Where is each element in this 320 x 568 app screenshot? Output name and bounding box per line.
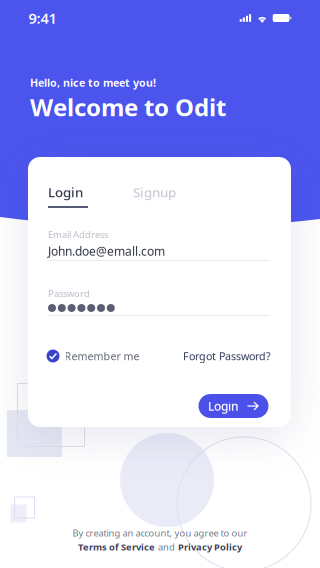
button[interactable]: Login [48,185,90,208]
staticText: Remember me [64,349,139,363]
staticText: Login [48,183,83,201]
button[interactable]: Terms of Service [78,541,155,553]
staticText: Hello, nice to meet you! [30,75,156,90]
button[interactable]: Forgot Password? [183,349,271,363]
staticText: 9:41 [28,8,56,28]
staticText: and [158,541,175,553]
staticText: By creating an account, you agree to our [72,527,247,539]
staticText: Email Address [48,228,108,241]
staticText: Signup [133,183,176,201]
staticText: Password [48,287,90,300]
staticText: John.doe@emall.com [48,243,165,259]
staticText: Forgot Password? [183,349,271,363]
staticText: Privacy Policy [178,541,242,553]
button[interactable]: Remember me [46,349,139,363]
staticText: Welcome to Odit [30,91,226,123]
staticText: Terms of Service [78,541,155,553]
button[interactable]: Signup [133,185,181,199]
button[interactable]: Privacy Policy [178,541,242,553]
staticText: Login [208,398,239,414]
button[interactable]: Login [198,394,268,418]
